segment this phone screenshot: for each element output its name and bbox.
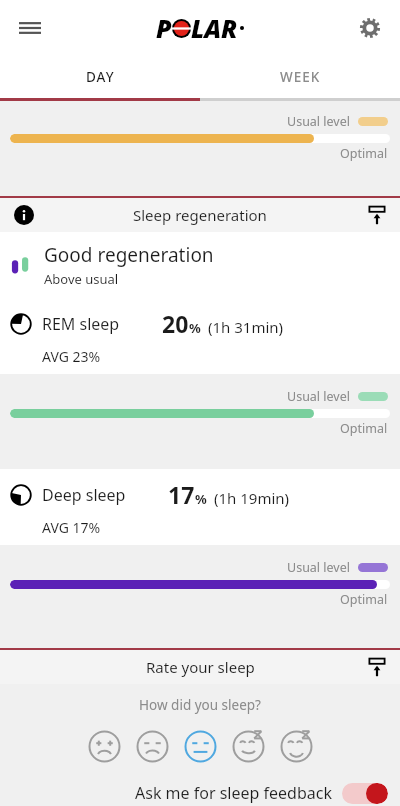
button[interactable]: Sleep rating 4 xyxy=(224,722,272,770)
button[interactable]: Collapse section xyxy=(362,200,392,230)
button[interactable]: Sleep rating 5 xyxy=(272,722,320,770)
button[interactable]: Menu xyxy=(8,6,52,50)
staticText: Usual level xyxy=(287,559,350,576)
button[interactable]: Collapse section xyxy=(362,652,392,682)
staticText: % xyxy=(195,490,207,508)
staticText: Sleep regeneration xyxy=(133,205,267,225)
staticText: LAR xyxy=(191,11,238,45)
staticText: REM sleep xyxy=(42,313,120,335)
staticText: AVG 23% xyxy=(42,347,101,366)
staticText: 20 xyxy=(162,308,189,339)
staticText: Above usual xyxy=(44,270,119,288)
button[interactable]: Sleep rating 1 xyxy=(80,722,128,770)
staticText: P xyxy=(156,11,172,45)
button[interactable]: Rate your sleep xyxy=(0,650,400,684)
button[interactable]: Sleep rating 3 xyxy=(176,722,224,770)
staticText: Ask me for sleep feedback xyxy=(135,782,332,804)
button[interactable]: Information xyxy=(0,198,400,232)
staticText: Usual level xyxy=(287,388,350,405)
staticText: (1h 31min) xyxy=(208,317,284,337)
button[interactable]: Settings xyxy=(348,6,392,50)
button[interactable]: Deep sleep xyxy=(0,469,400,545)
staticText: How did you sleep? xyxy=(0,696,400,714)
staticText: AVG 17% xyxy=(42,518,101,537)
button[interactable]: REM sleep xyxy=(0,298,400,374)
button[interactable]: DAY xyxy=(0,56,200,98)
staticText: DAY xyxy=(86,68,115,86)
staticText: (1h 19min) xyxy=(214,488,290,508)
staticText: Optimal xyxy=(340,145,388,162)
button[interactable]: Information xyxy=(10,201,38,229)
staticText: % xyxy=(189,319,201,337)
staticText: Usual level xyxy=(287,113,350,130)
staticText: Optimal xyxy=(340,420,388,437)
staticText: WEEK xyxy=(280,68,321,86)
staticText: Deep sleep xyxy=(42,484,126,506)
staticText: 17 xyxy=(168,479,195,510)
staticText: Good regeneration xyxy=(44,242,214,268)
button[interactable]: Sleep rating 2 xyxy=(128,722,176,770)
button[interactable]: WEEK xyxy=(200,56,400,98)
button[interactable]: Ask me for sleep feedback xyxy=(0,782,400,804)
staticText: Rate your sleep xyxy=(146,657,255,677)
staticText: Optimal xyxy=(340,591,388,608)
button[interactable]: Good regeneration xyxy=(0,232,400,298)
